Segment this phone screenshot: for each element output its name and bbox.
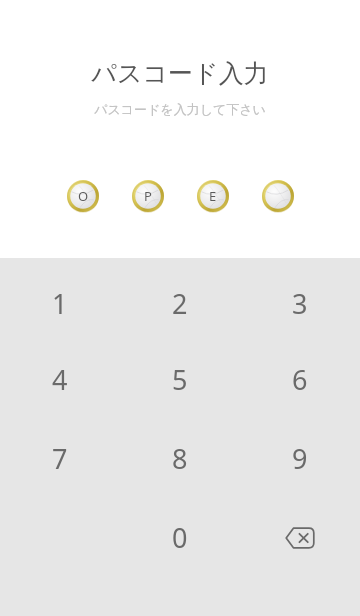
button[interactable]: Passcode entered xyxy=(67,180,99,212)
staticText: 6 xyxy=(292,361,308,398)
staticText: パスコード入力 xyxy=(91,58,269,89)
staticText: 2 xyxy=(172,285,188,322)
staticText: 0 xyxy=(172,519,188,556)
staticText: 1 xyxy=(52,285,68,322)
staticText: 5 xyxy=(172,361,188,398)
staticText: パスコードを入力して下さい xyxy=(94,101,266,117)
staticText: 8 xyxy=(172,440,188,477)
button[interactable]: 1 xyxy=(0,266,120,340)
button[interactable]: 9 xyxy=(240,419,360,498)
button[interactable]: Passcode entered xyxy=(197,180,229,212)
button[interactable]: 7 xyxy=(0,419,120,498)
button[interactable]: Passcode entered xyxy=(132,180,164,212)
button[interactable]: 6 xyxy=(240,340,360,419)
staticText: 4 xyxy=(52,361,68,398)
staticText: O xyxy=(78,187,89,205)
staticText: E xyxy=(209,187,217,205)
button[interactable]: Delete xyxy=(240,498,360,577)
button[interactable]: 8 xyxy=(120,419,240,498)
button[interactable]: 0 xyxy=(120,498,240,577)
button[interactable]: 5 xyxy=(120,340,240,419)
staticText: P xyxy=(144,187,152,205)
button[interactable]: 2 xyxy=(120,266,240,340)
staticText: 9 xyxy=(292,440,308,477)
button[interactable]: Empty passcode slot xyxy=(262,180,294,212)
staticText: 3 xyxy=(292,285,308,322)
button[interactable]: 3 xyxy=(240,266,360,340)
button[interactable]: 4 xyxy=(0,340,120,419)
staticText: 7 xyxy=(52,440,68,477)
